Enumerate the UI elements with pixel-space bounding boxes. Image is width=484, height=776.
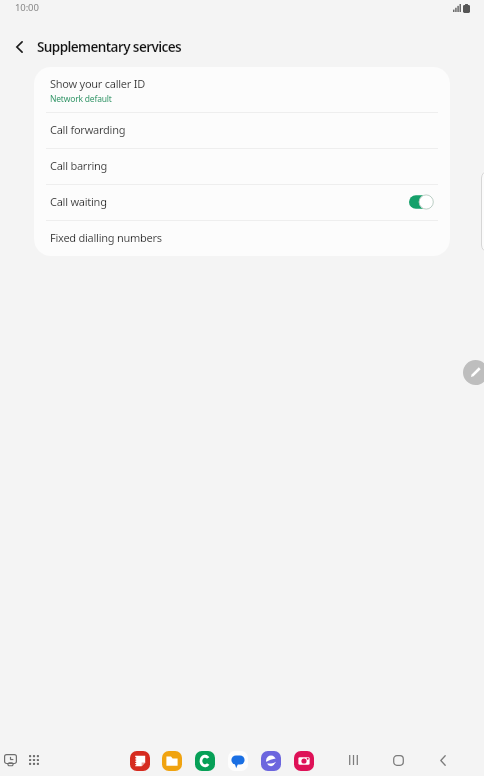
button[interactable]: Call forwarding [34, 112, 450, 148]
button[interactable]: Show your caller ID [34, 67, 450, 112]
button[interactable]: DeX mode [0, 748, 22, 772]
button[interactable]: Samsung Notes [130, 751, 150, 771]
button[interactable]: Edge panel handle [481, 170, 484, 253]
button[interactable]: Fixed dialling numbers [34, 220, 450, 256]
button[interactable]: Home [386, 748, 410, 772]
button[interactable]: Messages [228, 751, 248, 771]
button[interactable]: Call barring [34, 148, 450, 184]
staticText: Call barring [50, 158, 108, 173]
staticText: Supplementary services [37, 38, 182, 56]
staticText: Show your caller ID [50, 76, 145, 91]
button[interactable]: Call waiting [400, 184, 449, 220]
staticText: Call forwarding [50, 122, 126, 137]
button[interactable]: Internet [261, 751, 281, 771]
button[interactable]: Apps [22, 748, 46, 772]
staticText: Network default [50, 93, 112, 105]
button[interactable]: Phone [195, 751, 215, 771]
button[interactable]: Call waiting [34, 184, 450, 220]
button[interactable]: Air command [463, 360, 484, 385]
button[interactable]: Camera [294, 751, 314, 771]
button[interactable]: Navigate up [3, 30, 36, 63]
staticText: Fixed dialling numbers [50, 230, 162, 245]
staticText: 10:00 [15, 1, 39, 14]
button[interactable]: Recent apps [341, 748, 365, 772]
button[interactable]: Back [431, 748, 455, 772]
button[interactable]: My Files [162, 751, 182, 771]
staticText: Call waiting [50, 194, 107, 209]
